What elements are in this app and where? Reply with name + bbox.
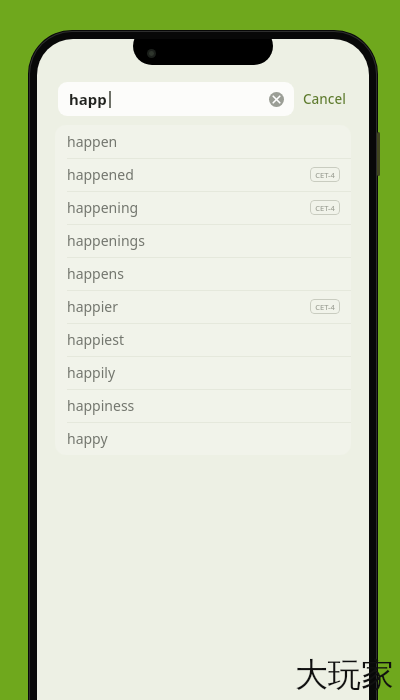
button[interactable]: happily <box>55 356 351 389</box>
staticText: happily <box>67 363 116 382</box>
staticText: happening <box>67 198 139 217</box>
staticText: happy <box>67 429 108 448</box>
staticText: happiness <box>67 396 135 415</box>
button[interactable]: Cancel <box>294 84 347 114</box>
staticText: happiest <box>67 330 124 349</box>
staticText: Cancel <box>303 90 346 108</box>
staticText: CET-4 <box>315 203 335 213</box>
staticText: 大玩家 <box>295 654 394 696</box>
button[interactable]: happened <box>55 158 351 191</box>
staticText: happen <box>67 132 118 151</box>
button[interactable]: happen <box>55 125 351 158</box>
staticText: happenings <box>67 231 145 250</box>
staticText: happier <box>67 297 119 316</box>
button[interactable]: happier <box>55 290 351 323</box>
staticText: happens <box>67 264 124 283</box>
staticText: happ <box>69 89 107 109</box>
button[interactable]: happiest <box>55 323 351 356</box>
button[interactable]: Clear text <box>267 90 285 108</box>
button[interactable]: happy <box>55 422 351 455</box>
staticText: happened <box>67 165 134 184</box>
button[interactable]: happ <box>58 82 294 116</box>
button[interactable]: happenings <box>55 224 351 257</box>
button[interactable]: happiness <box>55 389 351 422</box>
staticText: CET-4 <box>315 302 335 312</box>
button[interactable]: happens <box>55 257 351 290</box>
staticText: CET-4 <box>315 170 335 180</box>
button[interactable]: happening <box>55 191 351 224</box>
